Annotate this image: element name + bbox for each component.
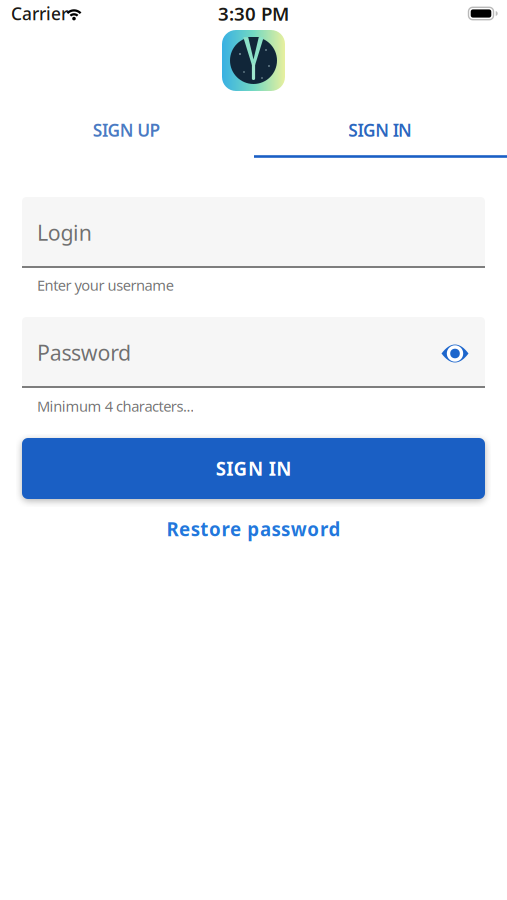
staticText: Minimum 4 characters... xyxy=(37,396,194,416)
staticText: SIGN UP xyxy=(93,118,161,141)
button[interactable]: Restore password xyxy=(103,511,403,547)
button[interactable]: SIGN UP xyxy=(0,107,253,153)
staticText: 3:30 PM xyxy=(218,1,289,26)
staticText: Password xyxy=(37,338,131,367)
staticText: Enter your username xyxy=(37,275,174,295)
button[interactable]: SIGN IN xyxy=(22,438,485,499)
button[interactable]: Show password xyxy=(433,331,477,375)
staticText: Carrier xyxy=(11,2,68,25)
staticText: SIGN IN xyxy=(216,456,291,481)
staticText: Restore password xyxy=(166,517,340,541)
staticText: Login xyxy=(37,218,92,247)
button[interactable]: SIGN IN xyxy=(254,107,507,153)
staticText: SIGN IN xyxy=(348,118,412,141)
